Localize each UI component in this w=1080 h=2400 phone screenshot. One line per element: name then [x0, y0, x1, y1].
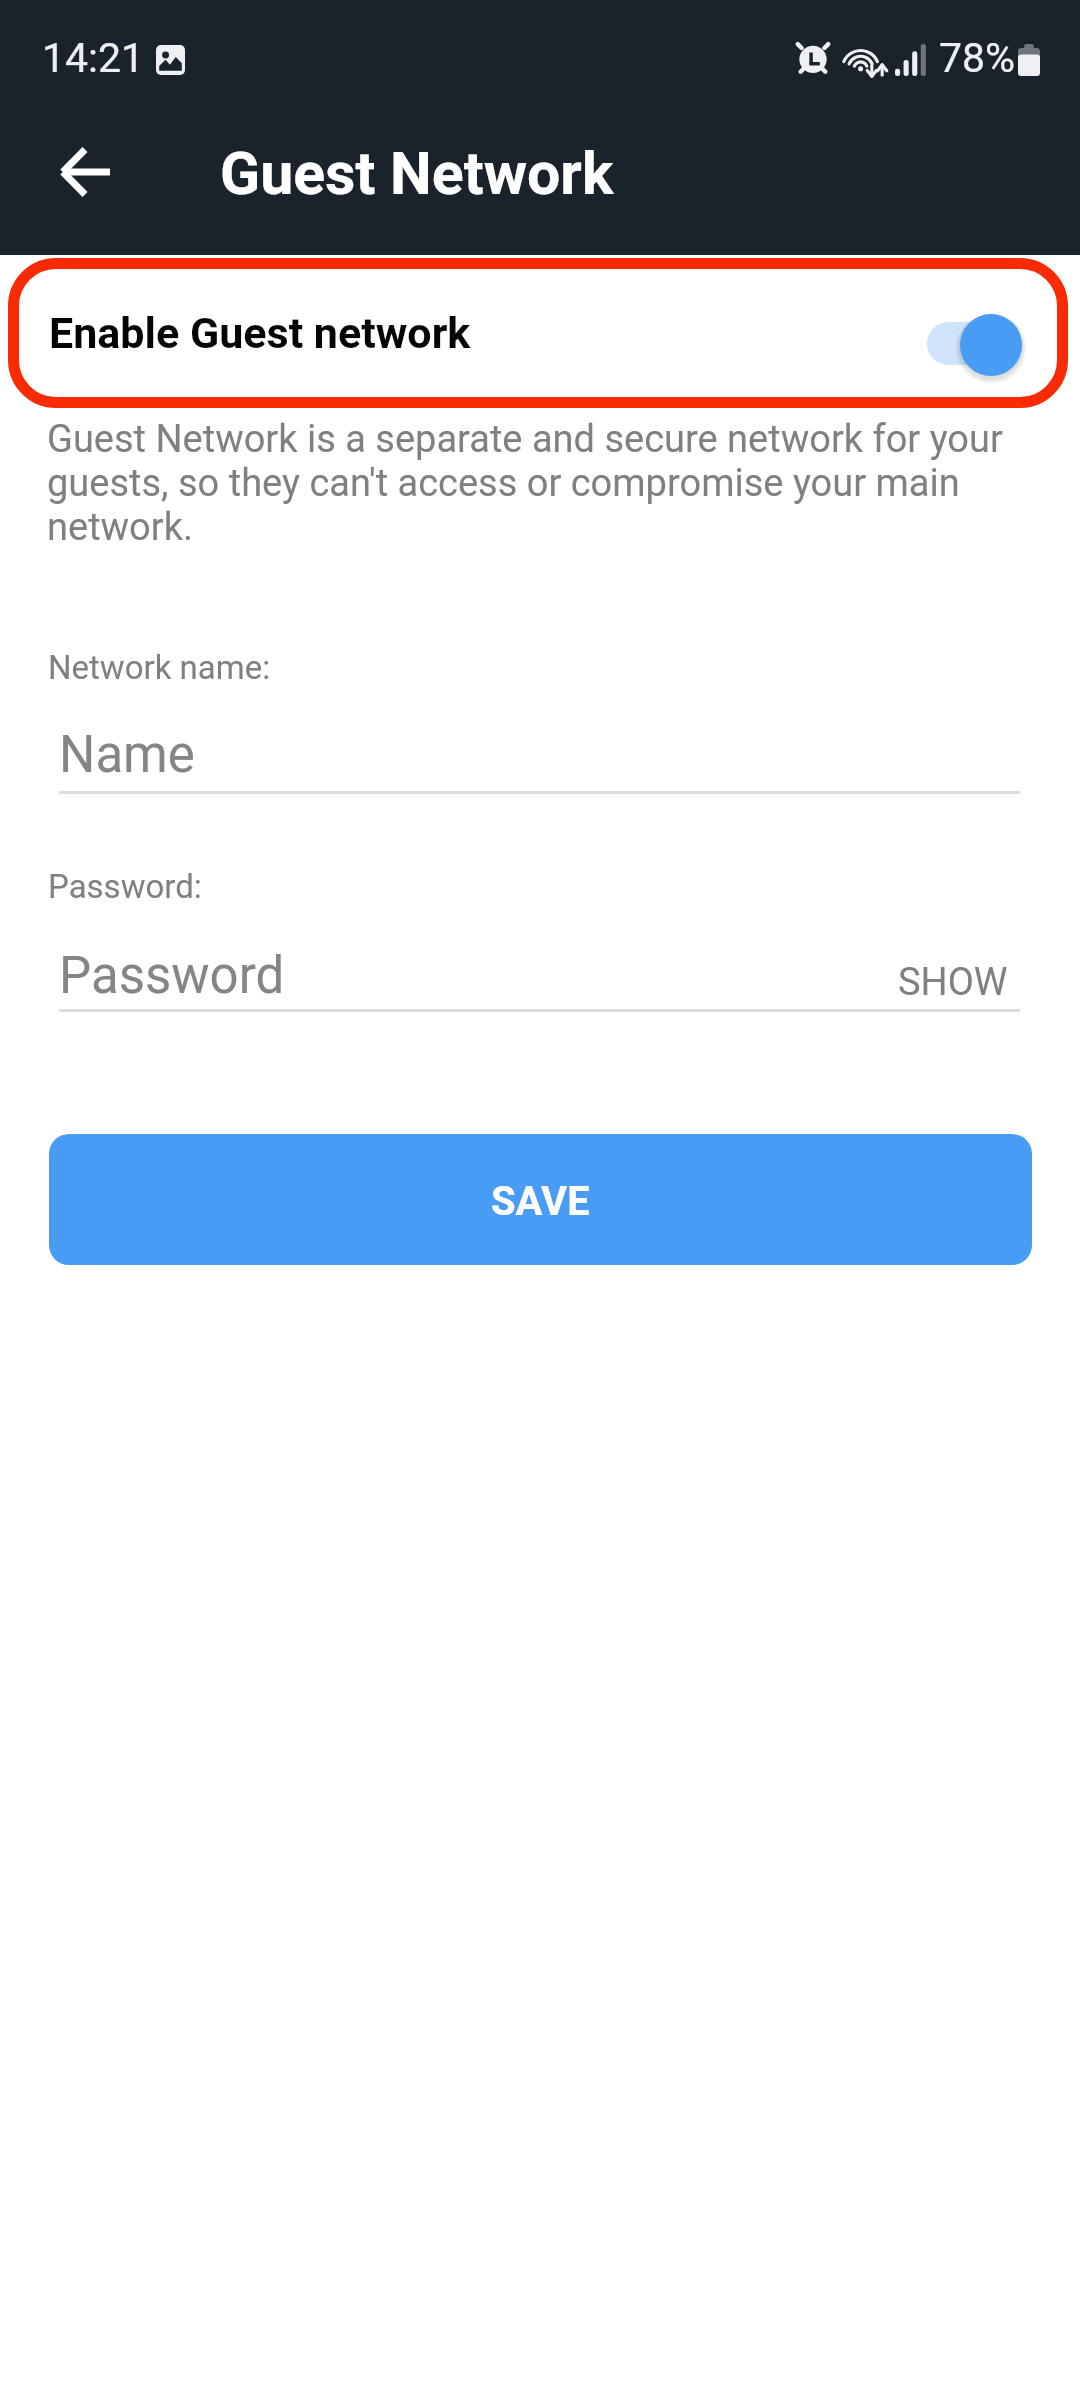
staticText: Network name:: [48, 648, 271, 687]
button[interactable]: Enable Guest network: [8, 258, 1068, 408]
staticText: SAVE: [491, 1178, 590, 1225]
button[interactable]: SHOW: [874, 946, 1044, 1006]
button[interactable]: Back: [29, 116, 141, 228]
staticText: Guest Network is a separate and secure n…: [47, 417, 1008, 549]
staticText: Guest Network: [220, 139, 614, 208]
button[interactable]: Enable Guest network: [917, 288, 1022, 378]
staticText: 78%: [939, 34, 1016, 82]
staticText: Enable Guest network: [49, 308, 471, 358]
staticText: 14:21: [42, 34, 145, 82]
staticText: Password: [59, 946, 285, 1006]
button[interactable]: SAVE: [49, 1134, 1032, 1265]
staticText: SHOW: [898, 960, 1008, 1005]
staticText: Password:: [48, 867, 202, 906]
staticText: Name: [59, 725, 195, 785]
